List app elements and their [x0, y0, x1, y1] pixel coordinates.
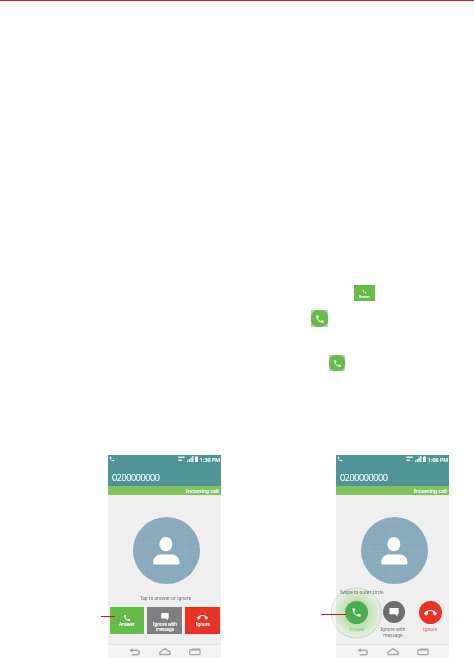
button[interactable]: Answer	[354, 285, 375, 301]
button[interactable]: Home	[155, 645, 175, 658]
button[interactable]: Recent apps	[413, 645, 433, 658]
button[interactable]: Home	[383, 645, 403, 658]
staticText: Ignore	[423, 626, 438, 632]
staticText: Incoming call	[414, 487, 447, 494]
button[interactable]: Back	[125, 645, 145, 658]
staticText: Answer	[359, 295, 370, 299]
button[interactable]: Back	[353, 645, 373, 658]
staticText: 0200000000	[112, 471, 160, 483]
staticText: Ignore with message	[379, 626, 407, 638]
staticText: Incoming call	[186, 487, 219, 494]
button[interactable]: Ignore	[185, 607, 220, 634]
staticText: 1:06 PM	[428, 456, 449, 463]
button[interactable]: Ignore	[419, 601, 442, 624]
staticText: 0200000000	[340, 471, 388, 483]
button[interactable]: Answer	[110, 607, 144, 634]
button[interactable]: Ignore with message	[147, 607, 182, 634]
staticText: Answer	[349, 626, 366, 632]
button[interactable]: Answer	[311, 310, 328, 327]
button[interactable]: Answer	[329, 355, 345, 371]
button[interactable]: Ignore with message	[383, 601, 405, 623]
staticText: 1:30 PM	[200, 456, 221, 463]
staticText: Ignore with message	[153, 621, 177, 632]
staticText: Answer	[119, 621, 135, 627]
staticText: Swipe to outer circle	[340, 589, 384, 595]
staticText: Ignore	[196, 621, 210, 627]
staticText: Tap to answer or ignore	[140, 595, 192, 601]
button[interactable]: Answer	[345, 601, 368, 624]
button[interactable]: Recent apps	[185, 645, 205, 658]
